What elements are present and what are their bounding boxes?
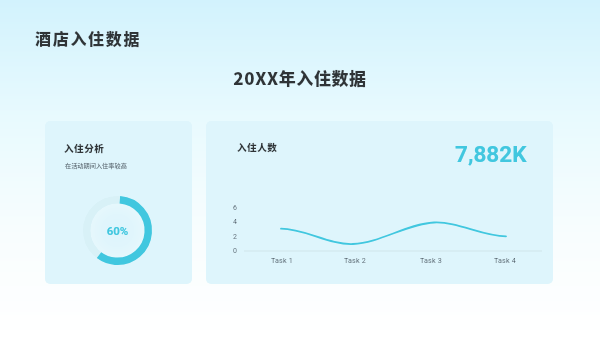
staticText: 20XX年入住数据	[0, 65, 600, 90]
staticText: 2	[233, 233, 237, 241]
staticText: Task 1	[262, 256, 302, 264]
staticText: 酒店入住数据	[35, 26, 142, 49]
staticText: Task 3	[411, 256, 451, 264]
other: 入住率 60%	[83, 196, 152, 265]
staticText: Task 4	[485, 256, 525, 264]
button[interactable]: 入住分析	[45, 121, 192, 284]
staticText: Task 2	[335, 256, 375, 264]
staticText: 在活动期间入住率较高	[65, 161, 127, 170]
staticText: 入住人数	[237, 140, 278, 154]
staticText: 4	[233, 218, 237, 226]
staticText: 6	[233, 204, 237, 212]
staticText: 7,882K	[455, 141, 527, 167]
button[interactable]: 入住人数	[206, 121, 553, 284]
staticText: 60%	[83, 224, 152, 237]
staticText: 入住分析	[64, 141, 105, 155]
staticText: 0	[233, 247, 237, 255]
